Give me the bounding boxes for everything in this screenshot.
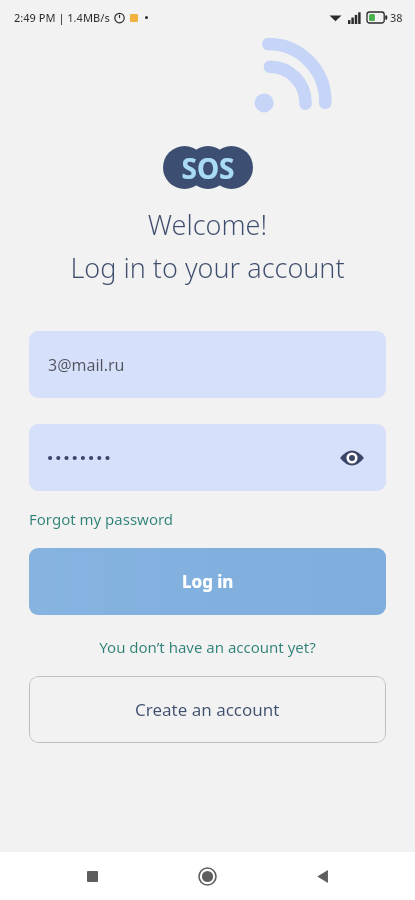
staticText: Welcome! [0, 206, 415, 243]
button[interactable]: Create an account [29, 676, 386, 743]
button[interactable]: Recent apps [70, 854, 114, 898]
staticText: 2:49 PM | 1.4MB/s [14, 10, 110, 25]
staticText: 3@mail.ru [48, 354, 125, 376]
staticText: SOS [181, 149, 235, 187]
staticText: 38 [390, 10, 403, 25]
staticText: Create an account [135, 698, 280, 721]
staticText: Forgot my password [29, 509, 174, 529]
button[interactable]: Home [185, 854, 229, 898]
button[interactable]: 3@mail.ru [29, 331, 386, 398]
staticText: Log in to your account [0, 249, 415, 286]
button[interactable]: You don’t have an account yet? [0, 637, 415, 657]
button[interactable]: Forgot my password [29, 509, 174, 529]
button[interactable]: Show password [332, 438, 372, 478]
button[interactable]: Show password [29, 424, 386, 491]
button[interactable]: Log in [29, 548, 386, 615]
staticText: You don’t have an account yet? [99, 637, 316, 657]
staticText: Log in [182, 570, 234, 593]
button[interactable]: Back [300, 854, 344, 898]
